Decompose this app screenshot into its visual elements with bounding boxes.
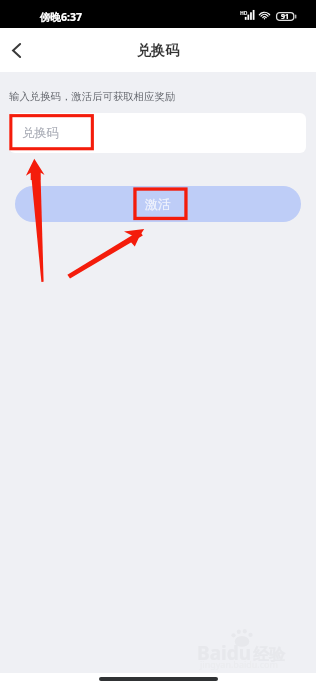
- button[interactable]: 兑换码: [9, 113, 306, 153]
- staticText: 经验: [253, 645, 285, 665]
- staticText: 兑换码: [137, 42, 179, 60]
- staticText: 激活: [145, 196, 171, 212]
- staticText: 兑换码: [22, 125, 59, 140]
- button[interactable]: Back: [0, 28, 36, 72]
- staticText: 傍晚6:37: [40, 10, 82, 24]
- staticText: 91: [281, 12, 290, 21]
- staticText: HD: [240, 10, 248, 17]
- button[interactable]: 激活: [15, 186, 301, 222]
- staticText: 输入兑换码，激活后可获取相应奖励: [9, 90, 176, 103]
- staticText: Baidu: [197, 640, 252, 666]
